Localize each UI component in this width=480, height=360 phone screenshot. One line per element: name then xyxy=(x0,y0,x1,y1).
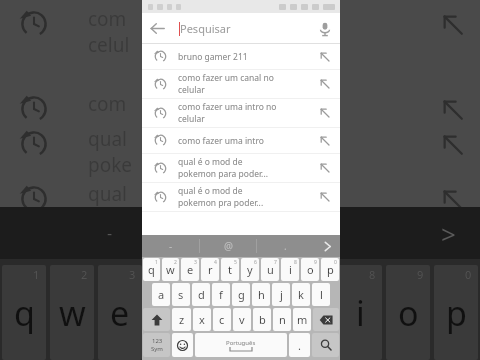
staticText: 8 xyxy=(369,267,376,282)
button[interactable]: qual é o mod de xyxy=(142,183,340,211)
staticText: r xyxy=(208,262,213,277)
button[interactable]: qual é o mod de xyxy=(142,154,340,182)
button[interactable]: Search xyxy=(312,333,339,357)
staticText: a xyxy=(158,287,165,302)
staticText: d xyxy=(198,287,205,302)
staticText: e xyxy=(110,290,130,336)
staticText: 9 xyxy=(314,259,317,266)
staticText: 6 xyxy=(254,259,257,266)
staticText: qual xyxy=(88,126,127,152)
staticText: . xyxy=(284,239,287,253)
staticText: e xyxy=(187,262,194,277)
button[interactable]: d xyxy=(192,283,210,306)
button[interactable]: 1 xyxy=(143,258,160,281)
staticText: . xyxy=(298,338,301,353)
button[interactable]: 2 xyxy=(162,258,179,281)
button[interactable]: 9 xyxy=(301,258,319,281)
staticText: celular xyxy=(178,84,205,96)
button[interactable]: More suggestions xyxy=(314,235,340,257)
button[interactable]: 7 xyxy=(261,258,279,281)
button[interactable]: Shift xyxy=(143,308,170,331)
staticText: 9 xyxy=(417,267,424,282)
staticText: z xyxy=(179,312,185,327)
button[interactable]: b xyxy=(253,308,271,331)
staticText: 2 xyxy=(174,259,177,266)
button[interactable]: como fazer um canal no xyxy=(142,70,340,98)
staticText: u xyxy=(301,290,323,336)
staticText: pokemon para poder... xyxy=(178,168,268,180)
staticText: celular xyxy=(178,113,205,125)
staticText: qual é o mod de xyxy=(178,156,243,168)
staticText: 1 xyxy=(33,267,40,282)
staticText: h xyxy=(258,287,265,302)
button[interactable]: v xyxy=(233,308,251,331)
button[interactable]: s xyxy=(172,283,190,306)
button[interactable]: como fazer uma intro xyxy=(142,128,340,153)
staticText: i xyxy=(356,290,365,336)
staticText: como fazer um canal no xyxy=(178,72,274,84)
button[interactable]: Backspace xyxy=(313,308,339,331)
staticText: k xyxy=(298,287,304,302)
button[interactable]: h xyxy=(252,283,270,306)
button[interactable]: 4 xyxy=(201,258,219,281)
button[interactable]: x xyxy=(193,308,211,331)
button[interactable]: 0 xyxy=(321,258,339,281)
staticText: qual xyxy=(88,181,127,207)
staticText: com xyxy=(88,91,127,117)
staticText: pokemon pra poder... xyxy=(178,197,264,209)
button[interactable]: Space xyxy=(195,333,287,357)
staticText: bruno gamer 211 xyxy=(178,51,248,63)
button[interactable]: 6 xyxy=(241,258,259,281)
staticText: w xyxy=(166,262,175,277)
button[interactable]: como fazer uma intro no xyxy=(142,99,340,127)
button[interactable]: g xyxy=(232,283,250,306)
button[interactable]: 8 xyxy=(281,258,299,281)
staticText: f xyxy=(219,287,223,302)
staticText: q xyxy=(14,290,35,336)
button[interactable]: Symbols xyxy=(143,333,170,357)
button[interactable]: c xyxy=(213,308,231,331)
staticText: o xyxy=(307,262,314,277)
button[interactable]: n xyxy=(273,308,291,331)
staticText: celul xyxy=(88,32,130,58)
button[interactable]: j xyxy=(272,283,290,306)
staticText: Pesquisar xyxy=(180,21,231,36)
staticText: - xyxy=(107,222,113,244)
button[interactable]: z xyxy=(172,308,191,331)
staticText: Sym xyxy=(151,345,163,353)
button[interactable]: m xyxy=(293,308,311,331)
button[interactable]: bruno gamer 211 xyxy=(142,44,340,69)
button[interactable]: Back xyxy=(142,13,173,44)
staticText: 2 xyxy=(81,267,88,282)
staticText: l xyxy=(320,287,323,302)
staticText: q xyxy=(148,262,155,277)
button[interactable]: k xyxy=(292,283,310,306)
button[interactable]: 3 xyxy=(181,258,199,281)
staticText: c xyxy=(219,312,225,327)
button[interactable]: . xyxy=(289,333,310,357)
staticText: j xyxy=(280,287,283,302)
staticText: y xyxy=(255,290,273,336)
staticText: 1 xyxy=(155,259,158,266)
staticText: 5 xyxy=(234,259,237,266)
staticText: qual é o mod de xyxy=(178,185,243,197)
staticText: g xyxy=(238,287,245,302)
button[interactable]: l xyxy=(312,283,330,306)
button[interactable]: Voice search xyxy=(309,13,340,44)
staticText: > xyxy=(441,216,456,251)
button[interactable]: @ xyxy=(200,235,257,257)
staticText: 3 xyxy=(129,267,136,282)
staticText: v xyxy=(239,312,245,327)
button[interactable]: Emoji xyxy=(172,333,193,357)
staticText: @ xyxy=(224,239,233,253)
button[interactable]: a xyxy=(152,283,170,306)
staticText: 4 xyxy=(214,259,217,266)
button[interactable]: f xyxy=(212,283,230,306)
button[interactable]: 5 xyxy=(221,258,239,281)
staticText: p xyxy=(327,262,334,277)
staticText: 123 xyxy=(152,337,163,345)
staticText: 7 xyxy=(274,259,277,266)
